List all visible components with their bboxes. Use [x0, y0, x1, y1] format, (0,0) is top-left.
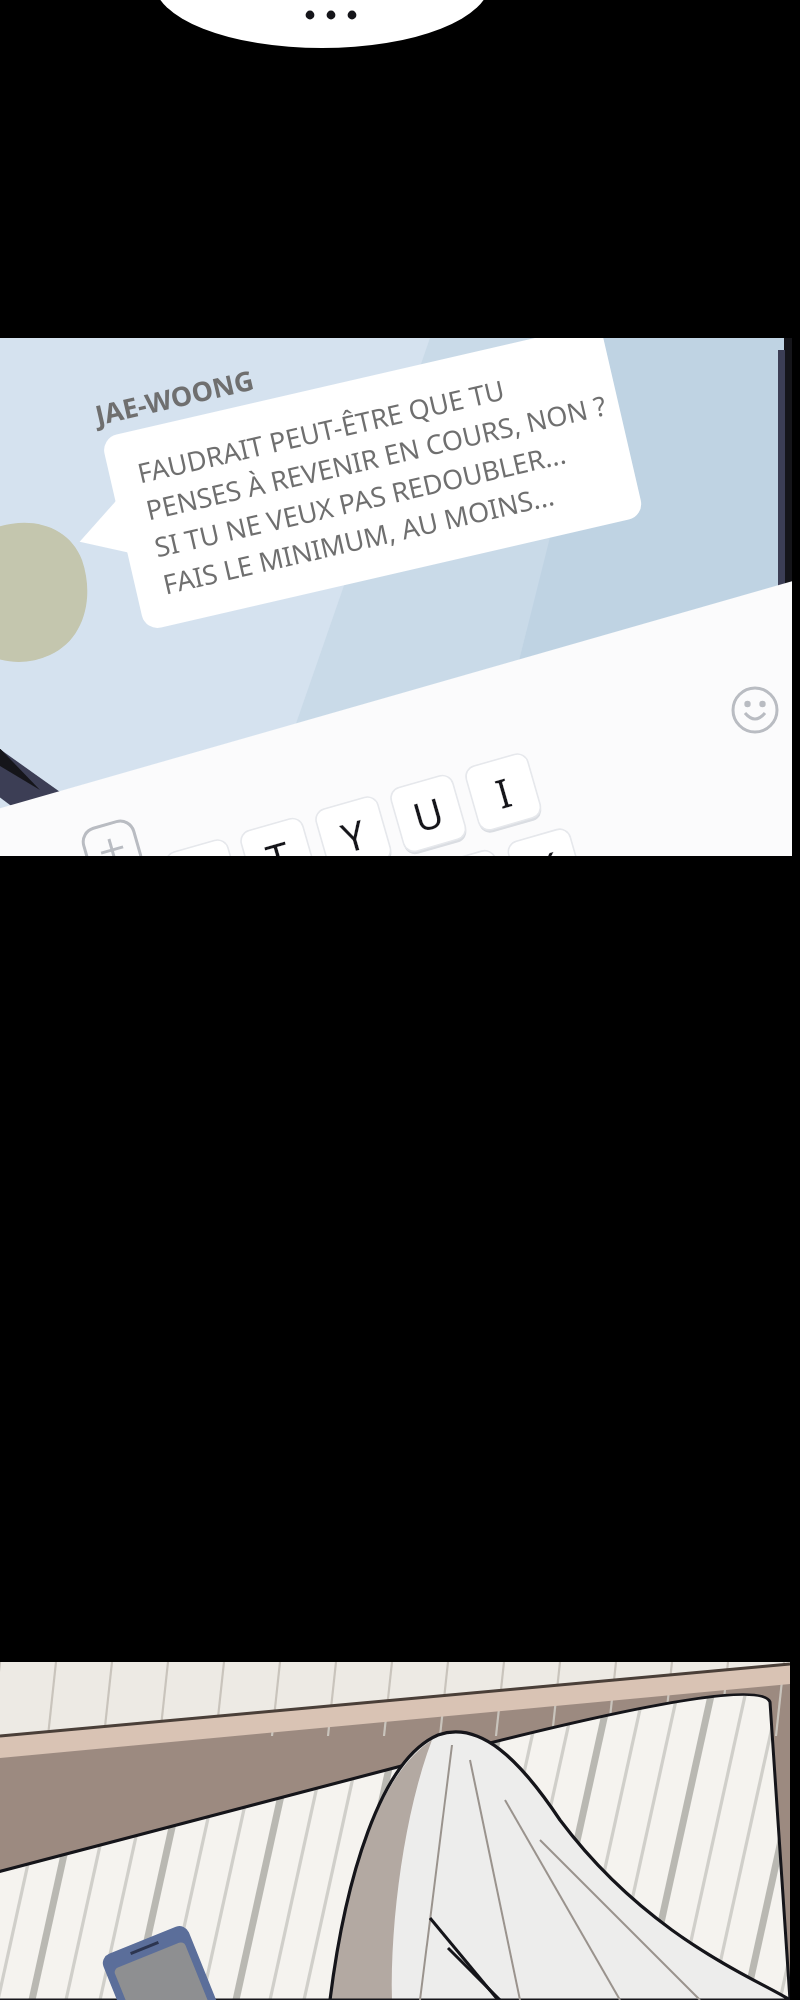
button[interactable]: Webtoon episode panel — [0, 0, 800, 2000]
